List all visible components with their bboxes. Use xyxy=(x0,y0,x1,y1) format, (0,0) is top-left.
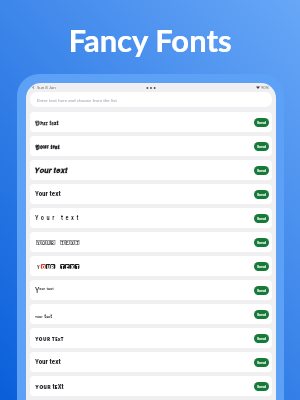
staticText: Enter text here and choose from the list xyxy=(37,97,117,103)
staticText: Send xyxy=(257,336,267,341)
staticText: Send xyxy=(257,360,267,365)
button[interactable]: Send xyxy=(254,142,269,151)
button[interactable]: Yᵒᵘʳ ᵗᵉˣᵗ xyxy=(30,280,272,300)
button[interactable]: ᵧₒᵤᵣ ₜₑₓₜ xyxy=(30,304,272,324)
staticText: T xyxy=(61,264,64,269)
staticText: R xyxy=(51,240,54,245)
staticText: Send xyxy=(257,384,267,389)
button[interactable]: YOUR TEXT xyxy=(30,256,272,276)
button[interactable]: Enter text here and choose from the list xyxy=(30,92,272,107)
staticText: E xyxy=(66,240,69,245)
staticText: X xyxy=(71,240,74,245)
button[interactable]: Your text xyxy=(30,184,272,204)
staticText: R xyxy=(51,264,54,269)
staticText: Send xyxy=(257,312,267,317)
staticText: O xyxy=(42,240,46,245)
staticText: Yᵒᵘʳ ᵗᵉˣᵗ xyxy=(35,286,54,294)
button[interactable]: Your text xyxy=(30,352,272,372)
button[interactable]: Send xyxy=(254,286,269,295)
button[interactable]: Send xyxy=(254,118,269,127)
staticText: Send xyxy=(257,120,267,125)
staticText: U xyxy=(47,240,50,245)
staticText: 𝔜𝔬𝔲𝔯 𝔱𝔢𝔵𝔱 xyxy=(35,118,59,126)
button[interactable]: Your text xyxy=(30,208,272,228)
staticText: Send xyxy=(257,288,267,293)
button[interactable]: Send xyxy=(254,238,269,247)
staticText: Your text xyxy=(35,190,61,198)
button[interactable]: Send xyxy=(254,166,269,175)
staticText: Your text xyxy=(35,214,81,222)
button[interactable]: Send xyxy=(254,310,269,319)
button[interactable]: ʏᴏᴜʀ ᴛᴇхᴛ xyxy=(30,328,272,348)
staticText: 𝒀𝒐𝒖𝒓 𝒕𝒆𝒙𝒕 xyxy=(35,166,68,175)
button[interactable]: ʏᴏuʀ tᴇΧt xyxy=(30,376,272,396)
staticText: Send xyxy=(257,168,267,173)
button[interactable]: Send xyxy=(254,190,269,199)
staticText: ʏᴏᴜʀ ᴛᴇхᴛ xyxy=(35,334,64,342)
button[interactable]: Send xyxy=(254,334,269,343)
button[interactable]: Send xyxy=(254,382,269,391)
staticText: O xyxy=(42,264,46,269)
staticText: Send xyxy=(257,240,267,245)
staticText: U xyxy=(47,264,50,269)
button[interactable]: Send xyxy=(254,214,269,223)
button[interactable]: Send xyxy=(254,262,269,271)
staticText: 𝖄𝖔𝖚𝖗 𝖙𝖊𝖝𝖙 xyxy=(35,142,60,150)
staticText: E xyxy=(66,264,69,269)
staticText: ᵧₒᵤᵣ ₜₑₓₜ xyxy=(35,310,53,319)
staticText: Send xyxy=(257,144,267,149)
staticText: ʏᴏuʀ tᴇΧt xyxy=(35,382,64,391)
button[interactable]: YOUR TEXT xyxy=(30,232,272,252)
button[interactable]: 𝒀𝒐𝒖𝒓 𝒕𝒆𝒙𝒕 xyxy=(30,160,272,180)
button[interactable]: Send xyxy=(254,358,269,367)
staticText: Send xyxy=(257,216,267,221)
staticText: X xyxy=(71,264,74,269)
staticText: Send xyxy=(257,192,267,197)
staticText: T xyxy=(76,240,79,245)
staticText: Send xyxy=(257,264,267,269)
staticText: Your text xyxy=(35,358,61,366)
staticText: Fancy Fonts xyxy=(0,21,300,58)
button[interactable]: 𝔜𝔬𝔲𝔯 𝔱𝔢𝔵𝔱 xyxy=(30,112,272,132)
staticText: Y xyxy=(37,264,40,269)
staticText: Sun 8 Jun xyxy=(37,85,56,90)
staticText: Y xyxy=(37,240,40,245)
staticText: T xyxy=(76,264,79,269)
staticText: T xyxy=(61,240,64,245)
button[interactable]: 𝖄𝖔𝖚𝖗 𝖙𝖊𝖝𝖙 xyxy=(30,136,272,156)
staticText: 90% xyxy=(261,85,269,90)
